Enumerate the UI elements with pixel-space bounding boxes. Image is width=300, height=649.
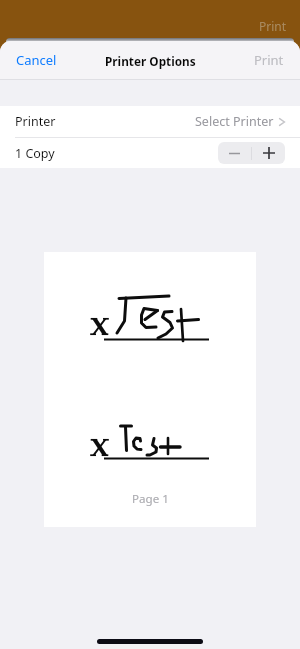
button[interactable]: Cancel [0,43,67,77]
staticText: Print [254,51,284,69]
staticText: Printer Options [105,53,196,69]
staticText: 1 Copy [15,145,55,162]
staticText: Printer [15,113,56,130]
button[interactable]: Decrease copies [218,142,251,164]
staticText: Select Printer [195,113,274,130]
staticText: Print [259,18,287,34]
button[interactable]: Print [244,43,300,77]
button[interactable]: Printer [0,106,300,137]
button[interactable]: Increase copies [252,142,285,164]
staticText: Cancel [16,51,57,69]
staticText: Page 1 [132,491,169,507]
